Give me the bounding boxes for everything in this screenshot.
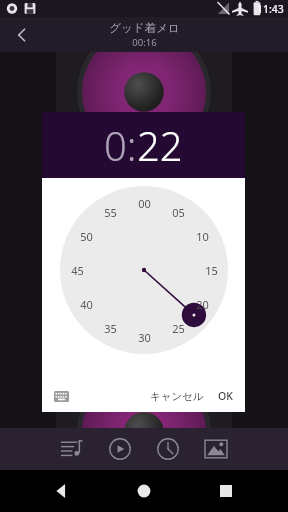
staticText: 30: [138, 330, 151, 345]
staticText: 00:16: [132, 36, 157, 49]
staticText: グッド着メロ: [109, 21, 180, 35]
staticText: 20: [196, 297, 209, 312]
staticText: 11:43: [257, 2, 284, 16]
button[interactable]: Gallery: [199, 432, 233, 466]
button[interactable]: 00: [60, 186, 228, 354]
staticText: 35: [104, 321, 117, 336]
staticText: 55: [104, 205, 117, 220]
staticText: 25: [172, 321, 185, 336]
staticText: 40: [80, 297, 93, 312]
button[interactable]: Play: [103, 432, 137, 466]
staticText: キャンセル: [150, 390, 204, 403]
button[interactable]: Keyboard input: [50, 385, 72, 407]
button[interactable]: OK: [212, 384, 245, 408]
staticText: 50: [80, 229, 93, 244]
button[interactable]: Timer: [151, 432, 185, 466]
button[interactable]: Back: [0, 17, 44, 52]
staticText: 45: [71, 263, 84, 278]
button[interactable]: Playlist: [55, 432, 89, 466]
staticText: 05: [172, 205, 185, 220]
button[interactable]: Recents: [206, 471, 246, 511]
button[interactable]: Back: [42, 471, 82, 511]
button[interactable]: 0:: [104, 118, 137, 172]
staticText: 10: [196, 229, 209, 244]
button[interactable]: Home: [124, 471, 164, 511]
staticText: OK: [218, 389, 233, 403]
button[interactable]: 22: [137, 118, 183, 172]
staticText: 00: [138, 196, 151, 211]
button[interactable]: キャンセル: [142, 385, 212, 408]
staticText: 15: [205, 263, 218, 278]
